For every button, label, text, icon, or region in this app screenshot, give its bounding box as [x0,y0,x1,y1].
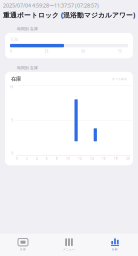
staticText: 4 [36,157,38,160]
staticText: 18 [114,157,118,160]
staticText: 5,34 [11,38,18,41]
button[interactable]: メニュー [46,233,92,256]
staticText: 重通ポートロック (混浴動マジカルアワー) [3,11,135,19]
staticText: 2 [26,157,28,160]
staticText: 在庫 [11,76,21,82]
staticText: 0 [10,50,12,53]
staticText: 2025/07/04 4:59:28〜11:37:57 (07:28:57) [3,2,99,9]
staticText: 時間別 在庫 [17,26,38,31]
staticText: 12 [78,157,82,160]
staticText: 25 [45,50,49,53]
staticText: 時間別 在庫 [17,65,38,70]
staticText: 14 [90,157,94,160]
button[interactable]: 在庫 [0,233,46,256]
staticText: 10 [9,85,13,89]
staticText: 75 [118,50,122,53]
staticText: 在庫 [20,248,26,251]
staticText: すべて表示 [112,77,127,81]
staticText: 10 [66,157,70,160]
staticText: 20 [126,157,130,160]
staticText: 50 [81,50,85,53]
staticText: 0 [11,152,13,155]
staticText: 16 [102,157,106,160]
staticText: 0 [16,157,18,160]
staticText: 分析 [112,248,118,251]
staticText: 8 [56,157,58,160]
staticText: 5 [11,119,13,122]
staticText: 6 [46,157,48,160]
button[interactable]: 分析 [92,233,138,256]
staticText: メニュー [63,248,75,251]
button[interactable]: 在庫 [5,72,133,85]
